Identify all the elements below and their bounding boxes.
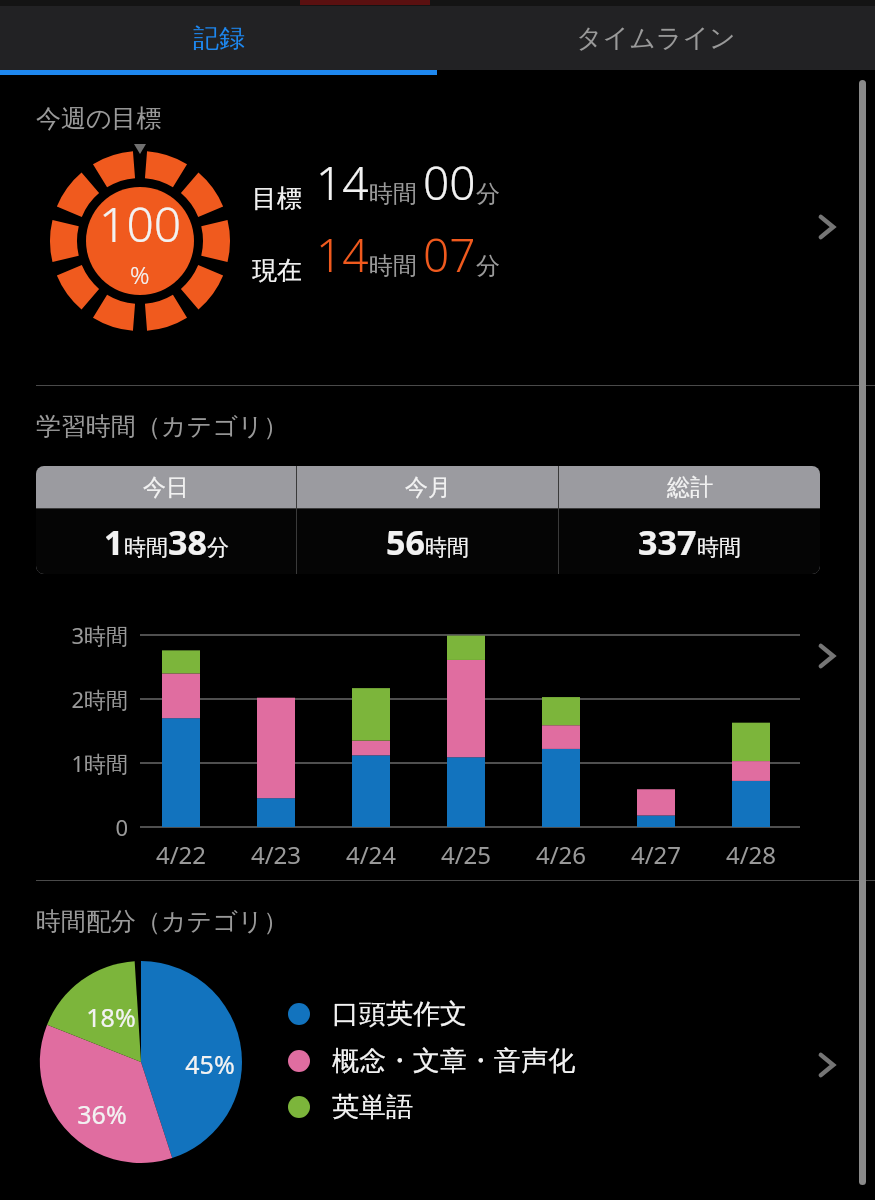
staticText: 口頭英作文: [332, 997, 467, 1031]
staticText: 0: [20, 812, 128, 842]
staticText: 総計: [667, 473, 713, 502]
staticText: %: [130, 258, 150, 291]
staticText: 分: [476, 251, 500, 281]
staticText: 時間: [124, 534, 168, 562]
staticText: 38: [168, 519, 207, 565]
staticText: 時間: [369, 251, 417, 281]
staticText: 337: [638, 519, 697, 565]
button[interactable]: 学習時間（カテゴリ）: [0, 386, 875, 880]
staticText: 18%: [71, 1000, 151, 1034]
staticText: 100: [99, 191, 182, 256]
staticText: 今月: [405, 473, 451, 502]
staticText: 1時間: [20, 748, 128, 778]
staticText: 今週の目標: [36, 103, 162, 134]
staticText: 4/26: [516, 838, 606, 871]
staticText: 時間: [369, 179, 417, 209]
staticText: 56: [386, 519, 425, 565]
staticText: 00: [423, 151, 476, 214]
button[interactable]: 記録: [0, 6, 437, 70]
staticText: 記録: [193, 22, 245, 55]
staticText: 時間配分（カテゴリ）: [36, 906, 289, 937]
button[interactable]: タイムライン: [437, 6, 875, 70]
staticText: 英単語: [332, 1090, 413, 1124]
staticText: 4/23: [231, 838, 321, 871]
staticText: タイムライン: [576, 22, 736, 55]
staticText: 14: [316, 223, 369, 286]
staticText: 概念・文章・音声化: [332, 1044, 575, 1078]
staticText: 2時間: [20, 684, 128, 714]
staticText: 今日: [143, 473, 189, 502]
staticText: 4/24: [326, 838, 416, 871]
staticText: 分: [476, 179, 500, 209]
staticText: 4/22: [136, 838, 226, 871]
staticText: 4/25: [421, 838, 511, 871]
staticText: 時間: [425, 534, 469, 562]
button[interactable]: 時間配分（カテゴリ）: [0, 881, 875, 1200]
button[interactable]: 今週の目標の詳細: [805, 205, 849, 249]
staticText: 時間: [697, 534, 741, 562]
button[interactable]: 時間配分の詳細: [805, 1043, 849, 1087]
staticText: 4/27: [611, 838, 701, 871]
staticText: 45%: [170, 1047, 250, 1081]
staticText: 分: [207, 534, 229, 562]
staticText: 3時間: [20, 620, 128, 650]
staticText: 現在: [252, 255, 302, 286]
staticText: 4/28: [706, 838, 796, 871]
staticText: 14: [316, 151, 369, 214]
button[interactable]: 今週の目標: [0, 75, 875, 385]
staticText: 36%: [62, 1097, 142, 1131]
button[interactable]: 学習時間の詳細: [805, 634, 849, 678]
staticText: 学習時間（カテゴリ）: [36, 411, 289, 442]
staticText: 1: [104, 519, 124, 565]
staticText: 目標: [252, 183, 302, 214]
staticText: 07: [423, 223, 476, 286]
